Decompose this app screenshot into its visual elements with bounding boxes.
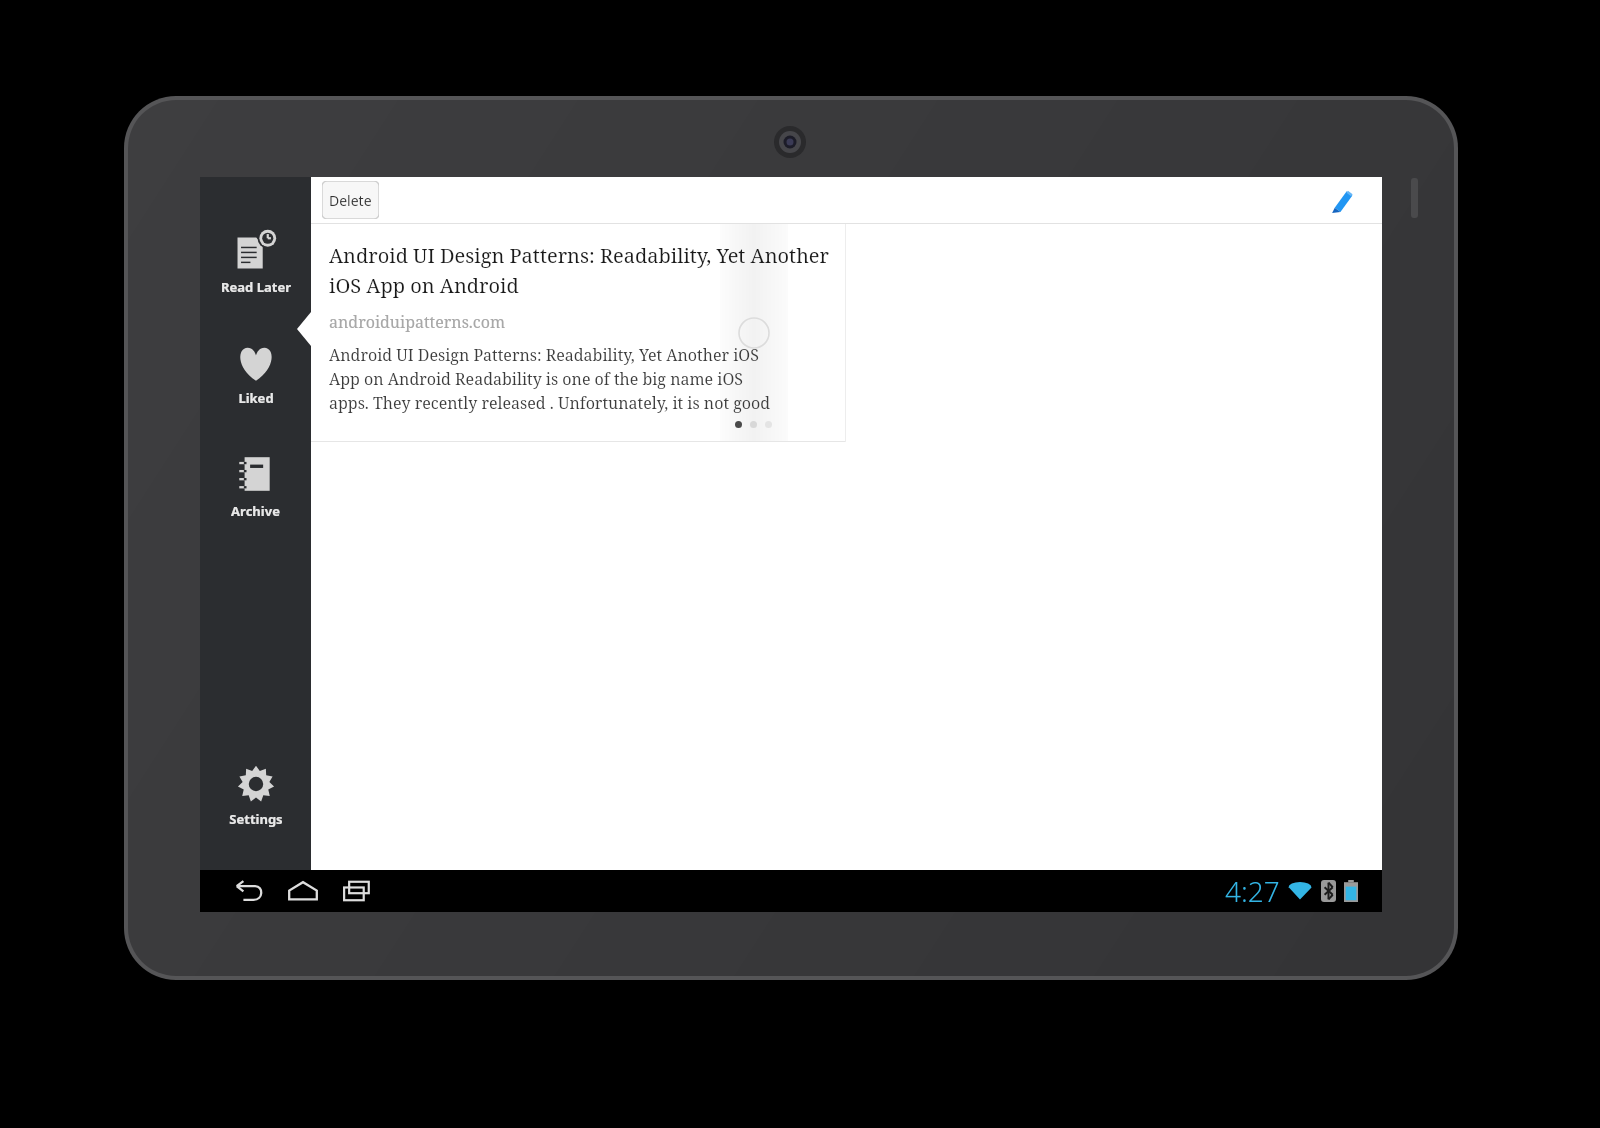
button[interactable]: Settings	[200, 761, 311, 832]
button[interactable]: Edit	[1320, 178, 1364, 222]
button[interactable]: Liked	[200, 340, 311, 411]
button[interactable]: Read Later	[200, 225, 311, 300]
staticText: Read Later	[221, 278, 291, 296]
staticText: androiduipatterns.com	[329, 311, 506, 333]
button[interactable]: Android UI Design Patterns: Readability,…	[311, 224, 846, 442]
staticText: Android UI Design Patterns: Readability,…	[329, 344, 771, 414]
staticText: Settings	[229, 810, 283, 828]
button[interactable]: Archive	[200, 449, 311, 524]
staticText: Liked	[238, 389, 274, 407]
staticText: Delete	[329, 191, 372, 210]
staticText: Android UI Design Patterns: Readability,…	[329, 242, 829, 299]
button[interactable]: Home	[276, 870, 330, 912]
button[interactable]: Recents	[330, 870, 384, 912]
button[interactable]: Back	[222, 870, 276, 912]
staticText: 4:27	[1225, 872, 1280, 910]
button[interactable]: Delete	[322, 181, 379, 219]
staticText: Archive	[231, 502, 280, 520]
